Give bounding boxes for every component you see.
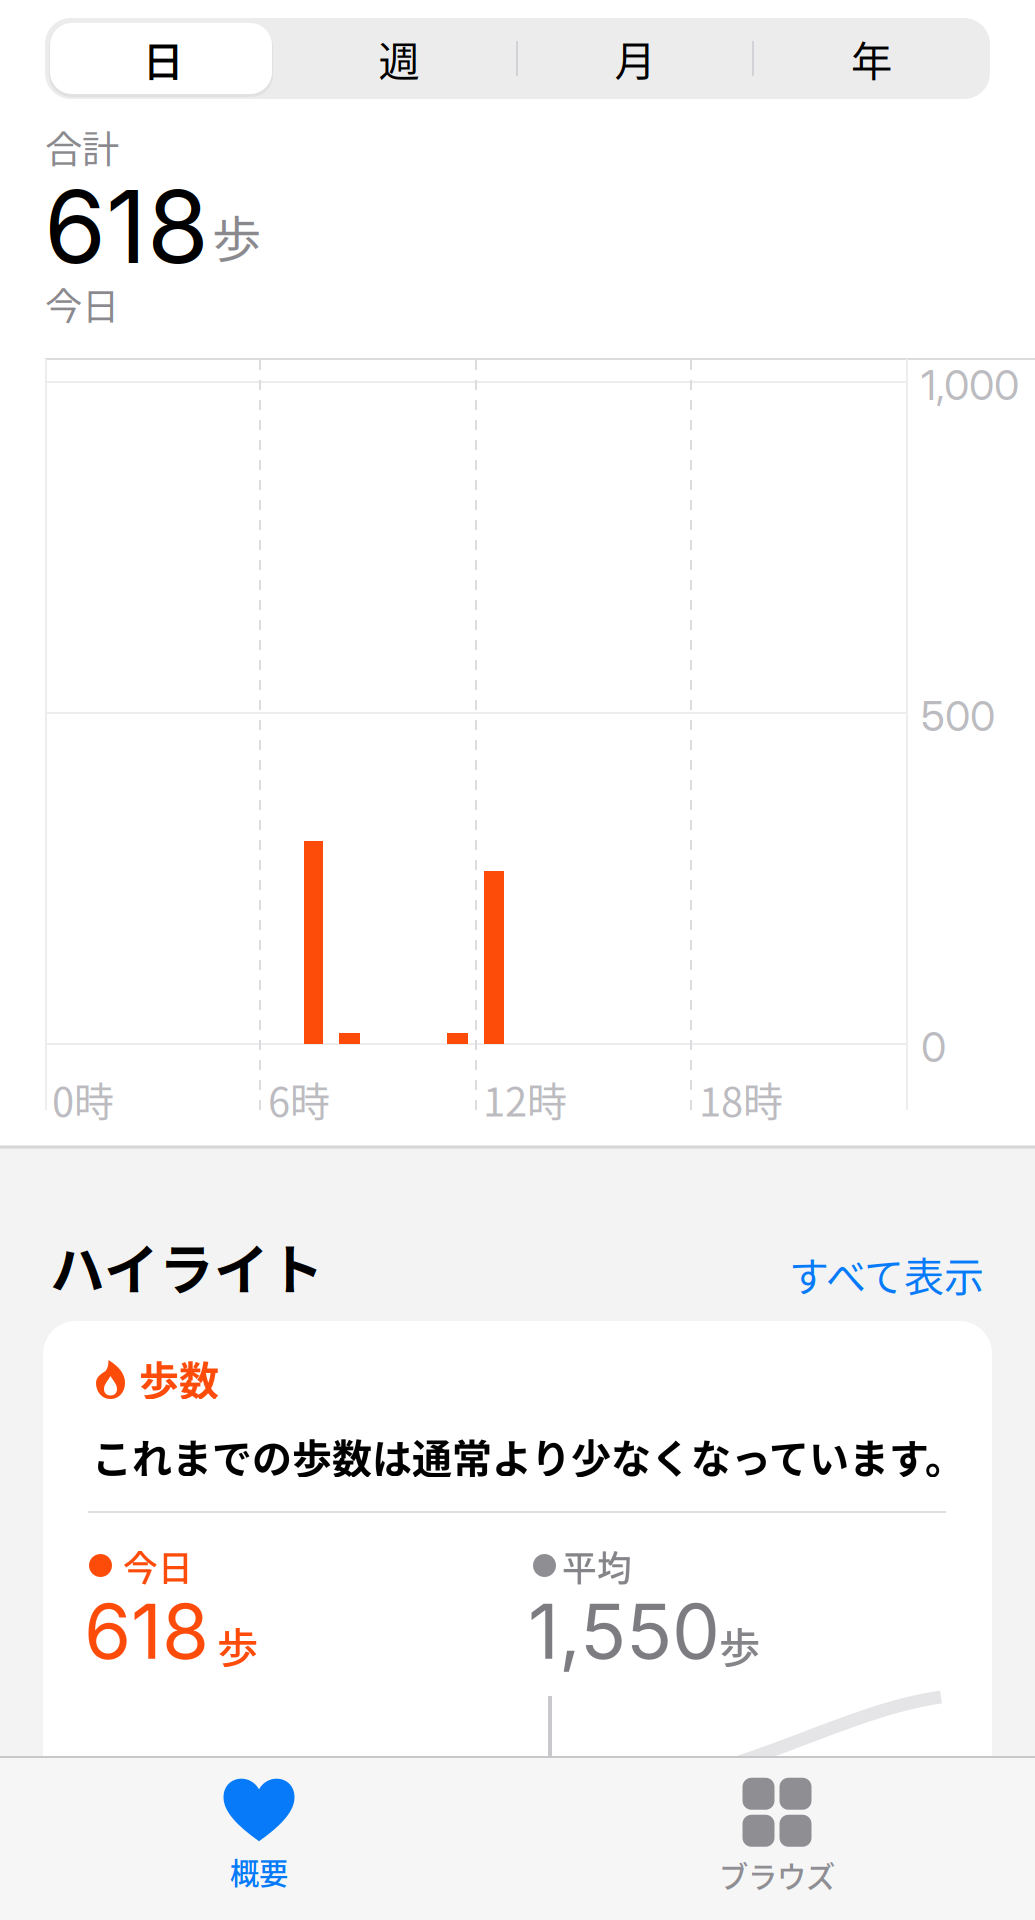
staticText: 月 bbox=[614, 29, 655, 88]
staticText: 年 bbox=[851, 29, 892, 88]
button[interactable]: ブラウズ bbox=[597, 1756, 957, 1918]
staticText: 日 bbox=[142, 29, 183, 88]
staticText: 概要 bbox=[230, 1850, 288, 1893]
staticText: 6時 bbox=[268, 1070, 330, 1128]
button[interactable]: 概要 bbox=[79, 1753, 439, 1915]
staticText: ブラウズ bbox=[719, 1854, 835, 1896]
staticText: 今日 bbox=[123, 1541, 193, 1591]
staticText: 歩数 bbox=[139, 1349, 219, 1407]
button[interactable]: 月 bbox=[517, 18, 753, 99]
button[interactable]: すべて表示 bbox=[784, 1247, 984, 1301]
staticText: すべて表示 bbox=[789, 1245, 984, 1303]
staticText: 今日 bbox=[45, 277, 119, 331]
staticText: 1,000 bbox=[921, 360, 1019, 410]
staticText: 歩 bbox=[212, 200, 261, 271]
staticText: 18時 bbox=[699, 1070, 783, 1128]
staticText: 618 bbox=[44, 166, 209, 287]
staticText: 週 bbox=[378, 29, 419, 88]
staticText: 合計 bbox=[45, 120, 119, 174]
button[interactable]: 日 bbox=[45, 18, 281, 99]
staticText: 0時 bbox=[52, 1070, 114, 1128]
staticText: 歩 bbox=[217, 1615, 258, 1675]
button[interactable]: 週 bbox=[281, 18, 517, 99]
button[interactable]: 年 bbox=[753, 18, 990, 99]
staticText: 618 bbox=[84, 1585, 209, 1677]
staticText: 1,550 bbox=[528, 1585, 720, 1677]
button[interactable]: 歩数 bbox=[43, 1321, 992, 1821]
staticText: 平均 bbox=[562, 1541, 632, 1591]
staticText: 500 bbox=[921, 691, 995, 741]
staticText: ハイライト bbox=[50, 1226, 324, 1305]
staticText: これまでの歩数は通常より少なくなっています。 bbox=[92, 1427, 965, 1485]
staticText: 12時 bbox=[483, 1070, 567, 1128]
staticText: 歩 bbox=[719, 1615, 760, 1675]
staticText: 0 bbox=[921, 1022, 946, 1072]
